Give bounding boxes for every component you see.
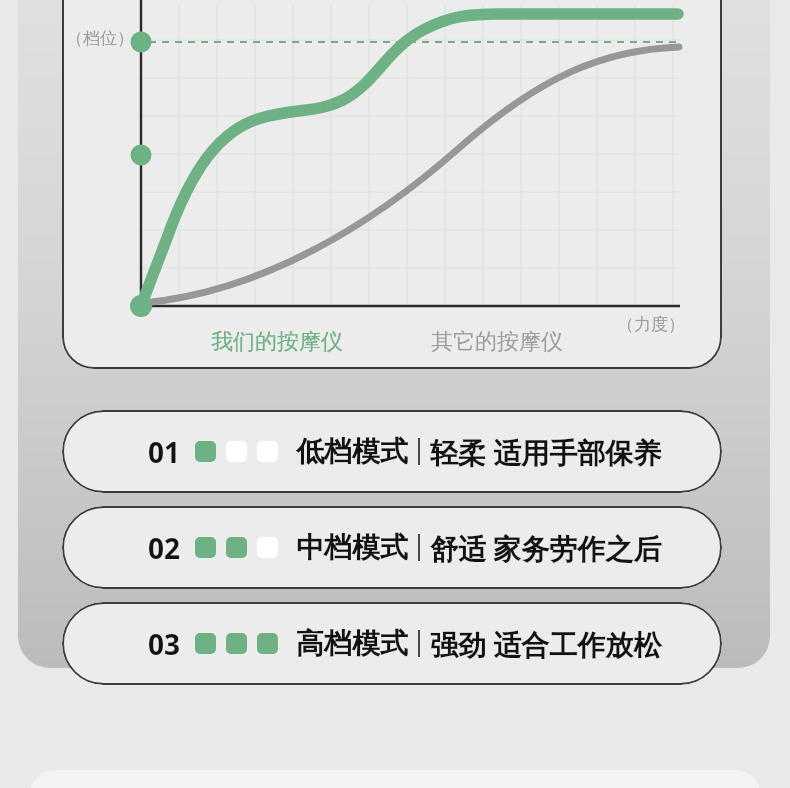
staticText: 01 [148, 433, 181, 471]
button[interactable]: 03 [62, 602, 722, 685]
staticText: 舒适 家务劳作之后 [430, 529, 662, 567]
staticText: 低档模式 [296, 434, 408, 469]
button[interactable]: 01 [62, 410, 722, 493]
staticText: 高档模式 [296, 626, 408, 661]
staticText: 02 [148, 529, 181, 567]
staticText: 强劲 适合工作放松 [430, 625, 662, 663]
staticText: 其它的按摩仪 [431, 328, 563, 356]
staticText: 03 [148, 625, 181, 663]
staticText: 我们的按摩仪 [211, 328, 343, 356]
staticText: （力度） [617, 314, 685, 335]
staticText: 中档模式 [296, 530, 408, 565]
button[interactable]: 02 [62, 506, 722, 589]
staticText: （档位） [66, 28, 134, 49]
staticText: 轻柔 适用手部保养 [430, 433, 662, 471]
